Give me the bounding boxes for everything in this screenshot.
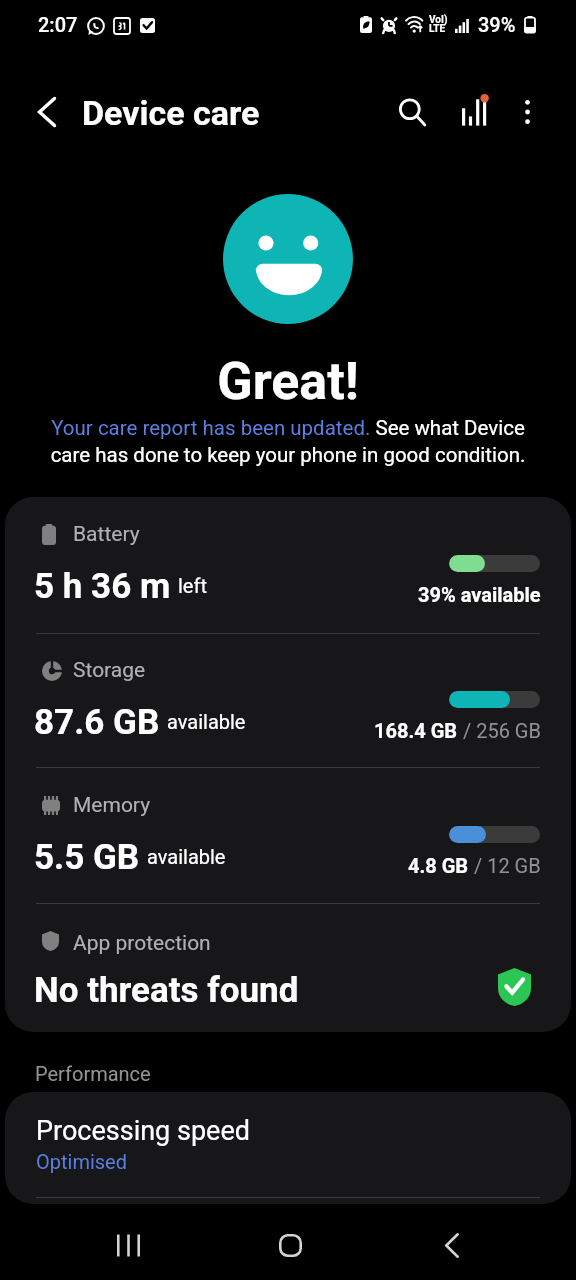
button[interactable]: Memory bbox=[5, 768, 571, 903]
staticText: / 12 GB bbox=[469, 854, 541, 877]
staticText: 87.6 GB bbox=[34, 702, 160, 743]
staticText: Battery bbox=[73, 522, 140, 547]
staticText: VoI) bbox=[429, 14, 448, 26]
staticText: App protection bbox=[73, 931, 211, 956]
staticText: 168.4 GB bbox=[374, 719, 458, 742]
button[interactable]: Processing speed bbox=[5, 1092, 571, 1197]
staticText: available bbox=[167, 710, 246, 733]
staticText: Memory bbox=[73, 793, 151, 818]
staticText: LTE bbox=[429, 23, 446, 35]
button[interactable]: Recent apps bbox=[94, 1215, 162, 1275]
staticText: available bbox=[147, 845, 226, 868]
button[interactable]: Search bbox=[384, 84, 440, 140]
button[interactable]: Navigate up bbox=[19, 84, 75, 140]
staticText: 39% available bbox=[418, 583, 541, 606]
staticText: 5 h 36 m bbox=[34, 566, 171, 607]
button[interactable]: Home bbox=[256, 1215, 324, 1275]
staticText: 5.5 GB bbox=[34, 837, 140, 878]
staticText: 4.8 GB bbox=[408, 854, 469, 877]
staticText: 2:07 bbox=[38, 13, 78, 36]
button[interactable]: Usage statistics bbox=[446, 84, 502, 140]
staticText: left bbox=[178, 574, 207, 597]
button[interactable]: Battery bbox=[5, 497, 571, 632]
button[interactable]: Storage bbox=[5, 633, 571, 768]
staticText: No threats found bbox=[34, 970, 299, 1011]
staticText: Performance bbox=[35, 1062, 151, 1085]
staticText: Processing speed bbox=[36, 1115, 250, 1147]
staticText: Optimised bbox=[36, 1150, 128, 1173]
staticText: Your care report has been updated. See w… bbox=[42, 416, 534, 467]
staticText: / 256 GB bbox=[458, 719, 541, 742]
button[interactable]: App protection bbox=[5, 903, 571, 1032]
staticText: Great! bbox=[0, 351, 576, 412]
button[interactable]: More options bbox=[500, 84, 556, 140]
staticText: Storage bbox=[73, 658, 146, 683]
staticText: Device care bbox=[82, 93, 260, 133]
button[interactable]: Back bbox=[418, 1215, 486, 1275]
staticText: 39% bbox=[478, 13, 516, 36]
